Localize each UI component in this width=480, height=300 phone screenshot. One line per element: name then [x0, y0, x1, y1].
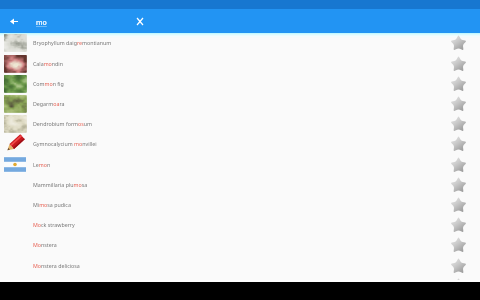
button[interactable]: Add to favorites: [448, 133, 468, 153]
button[interactable]: Lemon: [0, 154, 480, 174]
staticText: Degarmoara: [33, 100, 65, 107]
staticText: Monstera deliciosa: [33, 262, 80, 269]
button[interactable]: Mock strawberry: [0, 214, 480, 234]
button[interactable]: Add to favorites: [448, 214, 468, 234]
button[interactable]: Degarmoara: [0, 93, 480, 113]
button[interactable]: Bryophyllum daigremontianum: [0, 33, 480, 52]
button[interactable]: Common fig: [0, 73, 480, 93]
button[interactable]: Back: [5, 13, 22, 30]
staticText: Monstera: [33, 241, 57, 248]
button[interactable]: Add to favorites: [448, 275, 468, 280]
staticText: Bryophyllum daigremontianum: [33, 39, 112, 46]
button[interactable]: Mammillaria plumosa: [0, 174, 480, 194]
button[interactable]: Monstera: [0, 234, 480, 254]
button[interactable]: Mimosa pudica: [0, 194, 480, 214]
button[interactable]: Monstera deliciosa: [0, 255, 480, 275]
staticText: Gymnocalycium monvillei: [33, 140, 97, 147]
button[interactable]: Add to favorites: [448, 93, 468, 113]
staticText: Common fig: [33, 80, 64, 87]
staticText: Mock strawberry: [33, 221, 75, 228]
button[interactable]: Add to favorites: [448, 255, 468, 275]
button[interactable]: Add to favorites: [448, 73, 468, 93]
staticText: mo: [36, 18, 47, 28]
button[interactable]: Add to favorites: [448, 154, 468, 174]
staticText: Lemon: [33, 161, 51, 168]
button[interactable]: Add to favorites: [448, 234, 468, 254]
button[interactable]: Add to favorites: [448, 174, 468, 194]
button[interactable]: Add to favorites: [448, 33, 468, 52]
button[interactable]: Add to favorites: [448, 53, 468, 73]
button[interactable]: Add to favorites: [448, 113, 468, 133]
staticText: Mammillaria plumosa: [33, 181, 88, 188]
button[interactable]: Add to favorites: [448, 194, 468, 214]
staticText: Mimosa pudica: [33, 201, 71, 208]
staticText: Dendrobium formosum: [33, 120, 93, 127]
button[interactable]: Gymnocalycium monvillei: [0, 133, 480, 153]
staticText: Calamondin: [33, 60, 63, 67]
button[interactable]: mo: [33, 10, 133, 33]
button[interactable]: Dendrobium formosum: [0, 113, 480, 133]
button[interactable]: Clear search: [131, 13, 148, 30]
button[interactable]: Calamondin: [0, 53, 480, 73]
